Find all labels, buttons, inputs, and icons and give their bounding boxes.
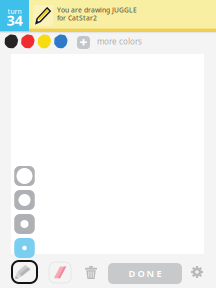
button[interactable]: Colour bbox=[20, 34, 35, 49]
button[interactable]: Brush size bbox=[14, 214, 35, 234]
staticText: for CatStar2 bbox=[57, 14, 97, 22]
button[interactable]: Colour bbox=[53, 34, 68, 49]
staticText: more colors bbox=[97, 36, 142, 47]
button[interactable]: Colour bbox=[37, 34, 52, 49]
button[interactable]: Settings bbox=[191, 266, 203, 278]
staticText: turn bbox=[7, 7, 21, 16]
button[interactable]: Brush size bbox=[14, 166, 35, 186]
button[interactable]: Colour bbox=[4, 34, 19, 49]
button[interactable]: Brush size bbox=[14, 190, 35, 210]
staticText: 34 bbox=[6, 10, 22, 30]
button[interactable]: More colors bbox=[77, 36, 90, 49]
button[interactable]: Clear drawing bbox=[85, 266, 97, 279]
button[interactable]: D O N E bbox=[108, 263, 182, 284]
button[interactable]: Brush size bbox=[14, 238, 35, 258]
button[interactable]: Pen bbox=[12, 261, 37, 283]
staticText: D O N E bbox=[128, 267, 161, 280]
staticText: You are drawing JUGGLE bbox=[57, 6, 137, 14]
button[interactable]: Eraser bbox=[49, 262, 71, 283]
